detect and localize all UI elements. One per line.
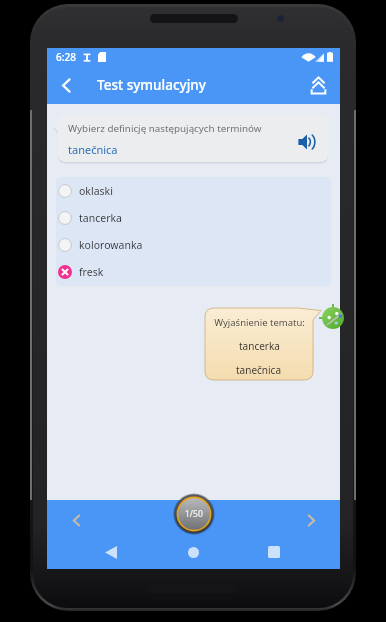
- button[interactable]: Next question: [298, 507, 324, 533]
- staticText: tancerka: [239, 339, 280, 353]
- button[interactable]: Play pronunciation: [292, 127, 322, 157]
- staticText: fresk: [79, 265, 104, 279]
- staticText: Test symulacyjny: [97, 76, 206, 94]
- staticText: Wyjaśnienie tematu:: [214, 316, 305, 329]
- staticText: oklaski: [79, 184, 113, 198]
- staticText: Wybierz definicję następujących terminów: [68, 122, 262, 135]
- staticText: tanečnica: [236, 363, 282, 377]
- button[interactable]: Question 1 of 50: [173, 493, 215, 535]
- staticText: tancerka: [79, 211, 122, 225]
- button[interactable]: fresk: [56, 258, 331, 285]
- button[interactable]: Back: [49, 68, 83, 102]
- button[interactable]: Collapse: [301, 68, 335, 102]
- button[interactable]: tancerka: [56, 204, 331, 231]
- button[interactable]: Back: [97, 538, 125, 566]
- staticText: tanečnica: [68, 142, 118, 157]
- button[interactable]: kolorowanka: [56, 231, 331, 258]
- button[interactable]: Previous question: [63, 507, 89, 533]
- staticText: 1/50: [185, 508, 203, 520]
- button[interactable]: oklaski: [56, 177, 331, 204]
- button[interactable]: Home: [179, 538, 207, 566]
- staticText: 6:28: [56, 50, 76, 64]
- button[interactable]: Recent apps: [260, 538, 288, 566]
- staticText: kolorowanka: [79, 238, 143, 252]
